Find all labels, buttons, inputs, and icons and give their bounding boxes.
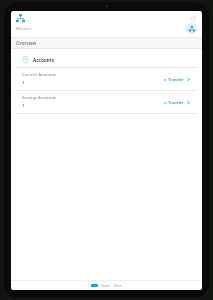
staticText: 1 xyxy=(22,80,25,86)
button[interactable]: Accounts xyxy=(15,52,198,67)
button[interactable]: Savings Accounts xyxy=(15,91,198,113)
staticText: Savings Accounts xyxy=(22,95,57,101)
staticText: Transfer xyxy=(168,77,184,82)
staticText: 1 xyxy=(22,103,25,109)
staticText: Current Accounts xyxy=(22,72,57,78)
button[interactable]: More xyxy=(114,284,122,288)
staticText: Accounts xyxy=(33,57,55,63)
button[interactable]: Page 1 xyxy=(91,284,98,287)
button[interactable]: Settings xyxy=(189,14,197,22)
button[interactable]: Profile xyxy=(186,23,197,34)
staticText: Welcome xyxy=(16,26,32,31)
staticText: Overview xyxy=(16,40,37,46)
button[interactable]: Home xyxy=(101,284,111,288)
button[interactable]: Current Accounts xyxy=(15,68,198,90)
staticText: Transfer xyxy=(168,100,184,105)
